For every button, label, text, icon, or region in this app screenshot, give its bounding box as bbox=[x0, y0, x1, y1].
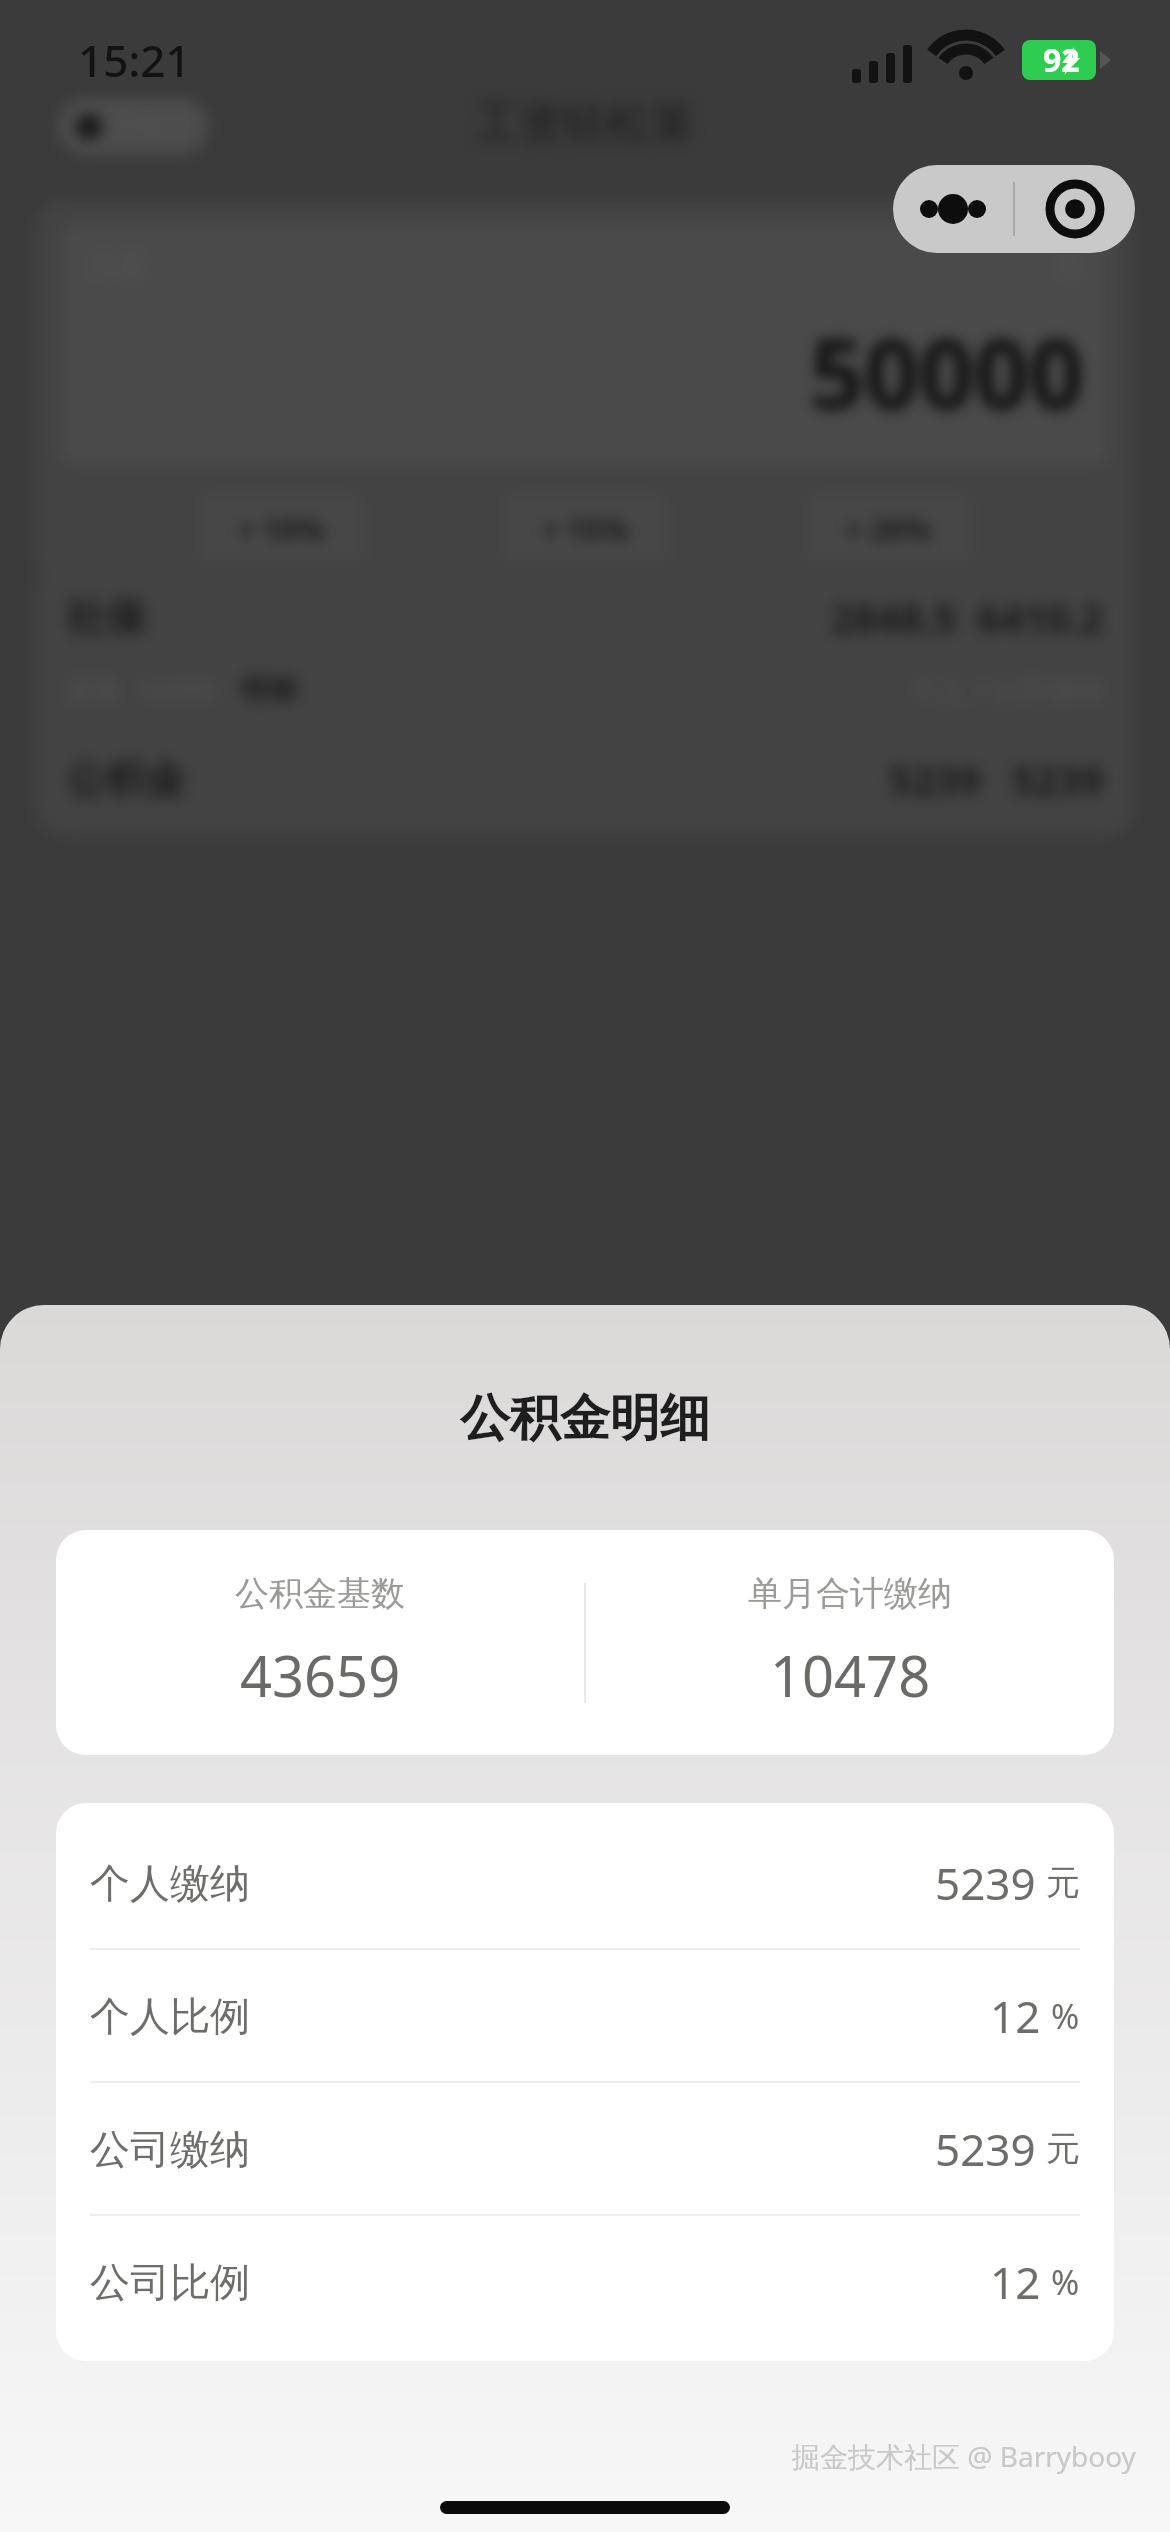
staticText: 50000 bbox=[86, 306, 1084, 437]
button[interactable]: 个人缴纳 bbox=[56, 1817, 1114, 1948]
staticText: + 10% bbox=[238, 509, 325, 550]
staticText: + 15% bbox=[542, 509, 629, 550]
staticText: 公司比例 bbox=[90, 2257, 250, 2307]
staticText: 12 bbox=[990, 1986, 1041, 2046]
staticText: 单月合计缴纳 bbox=[748, 1572, 952, 1615]
staticText: 掘金技术社区 @ Barrybooy bbox=[792, 2437, 1136, 2475]
staticText: 个人比例 bbox=[90, 1991, 250, 2041]
staticText: 2848.5 6410.2 bbox=[831, 590, 1104, 644]
staticText: 5239 bbox=[935, 1853, 1036, 1913]
staticText: 10478 bbox=[770, 1637, 931, 1713]
button[interactable]: More bbox=[893, 165, 1135, 253]
staticText: 5239 5239 bbox=[889, 752, 1104, 806]
staticText: 92 bbox=[1043, 38, 1080, 82]
staticText: 元 bbox=[1046, 2127, 1080, 2170]
button[interactable]: More bbox=[893, 165, 1013, 253]
staticText: 5239 bbox=[935, 2119, 1036, 2179]
staticText: % bbox=[1051, 1993, 1080, 2039]
staticText: 元 bbox=[1052, 246, 1084, 286]
staticText: 15:21 bbox=[78, 30, 191, 90]
staticText: 公积金基数 bbox=[235, 1572, 405, 1615]
button[interactable]: 公司比例 bbox=[56, 2216, 1114, 2347]
staticText: 元 bbox=[1046, 1861, 1080, 1904]
staticText: 社保 bbox=[66, 592, 146, 642]
staticText: 公司缴纳 bbox=[90, 2124, 250, 2174]
button[interactable]: 公积金基数 bbox=[56, 1572, 584, 1713]
button[interactable]: 公司缴纳 bbox=[56, 2083, 1114, 2214]
staticText: 明细 bbox=[241, 672, 297, 707]
button[interactable]: Close bbox=[1015, 165, 1135, 253]
staticText: 个人缴纳 bbox=[90, 1858, 250, 1908]
staticText: % bbox=[1051, 2259, 1080, 2305]
staticText: 43659 bbox=[240, 1637, 401, 1713]
button[interactable]: 个人比例 bbox=[56, 1950, 1114, 2081]
staticText: 工资轻松算 bbox=[0, 96, 1170, 151]
staticText: 公积金明细 bbox=[0, 1387, 1170, 1450]
staticText: + 20% bbox=[845, 509, 932, 550]
staticText: 公积金 bbox=[66, 754, 186, 804]
button[interactable]: 单月合计缴纳 bbox=[586, 1572, 1114, 1713]
staticText: 12 bbox=[990, 2252, 1041, 2312]
